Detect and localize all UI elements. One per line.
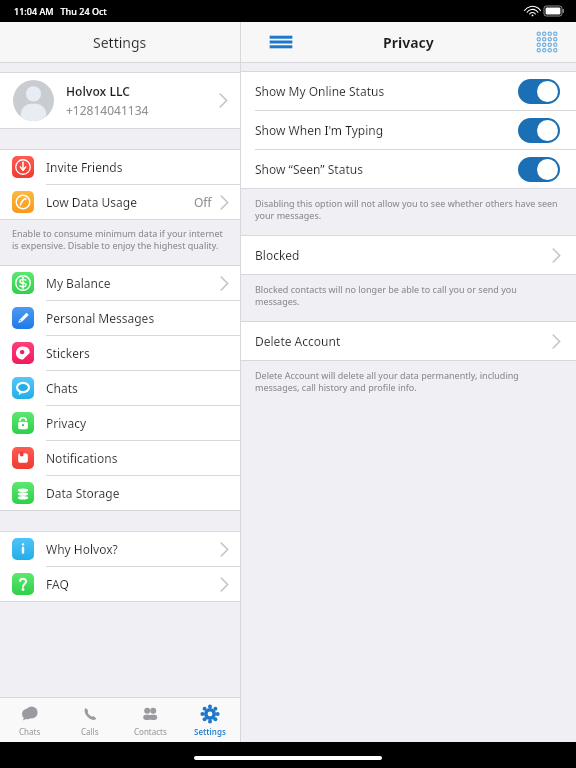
- button[interactable]: Delete Account: [241, 322, 576, 360]
- button[interactable]: Privacy: [0, 406, 240, 440]
- staticText: 11:04 AM Thu 24 Oct: [14, 5, 107, 17]
- button[interactable]: Show My Online Status: [241, 72, 576, 110]
- staticText: Personal Messages: [46, 310, 228, 326]
- staticText: Stickers: [46, 345, 228, 361]
- staticText: Why Holvox?: [46, 541, 220, 557]
- button[interactable]: Why Holvox?: [0, 532, 240, 566]
- staticText: Off: [194, 194, 212, 210]
- staticText: Settings: [93, 33, 147, 52]
- staticText: Blocked: [255, 247, 552, 263]
- staticText: Data Storage: [46, 485, 228, 501]
- staticText: Contacts: [134, 726, 167, 737]
- staticText: Blocked contacts will no longer be able …: [255, 283, 560, 308]
- staticText: FAQ: [46, 576, 220, 592]
- staticText: Chats: [19, 726, 41, 737]
- button[interactable]: Data Storage: [0, 476, 240, 510]
- staticText: Disabling this option will not allow you…: [255, 197, 560, 222]
- button[interactable]: Notifications: [0, 441, 240, 475]
- staticText: Privacy: [46, 415, 228, 431]
- button[interactable]: Calls: [60, 698, 120, 742]
- staticText: Notifications: [46, 450, 228, 466]
- staticText: Holvox LLC: [66, 83, 130, 99]
- button[interactable]: Show When I'm Typing: [241, 111, 576, 149]
- button[interactable]: FAQ: [0, 567, 240, 601]
- button[interactable]: Personal Messages: [0, 301, 240, 335]
- staticText: Settings: [194, 726, 226, 737]
- button[interactable]: Chats: [0, 371, 240, 405]
- button[interactable]: Blocked: [241, 236, 576, 274]
- staticText: Chats: [46, 380, 228, 396]
- staticText: Enable to consume minimum data if your i…: [12, 227, 226, 252]
- staticText: Low Data Usage: [46, 194, 194, 210]
- staticText: +12814041134: [66, 102, 149, 118]
- staticText: Show “Seen” Status: [255, 161, 518, 177]
- button[interactable]: Show “Seen” Status: [241, 150, 576, 188]
- button[interactable]: Menu: [269, 30, 293, 54]
- button[interactable]: Stickers: [0, 336, 240, 370]
- button[interactable]: Contacts: [120, 698, 180, 742]
- staticText: Show My Online Status: [255, 83, 518, 99]
- staticText: Delete Account: [255, 333, 552, 349]
- staticText: Privacy: [383, 33, 434, 52]
- button[interactable]: Chats: [0, 698, 60, 742]
- staticText: Calls: [81, 726, 99, 737]
- staticText: Show When I'm Typing: [255, 122, 518, 138]
- button[interactable]: Settings: [180, 698, 240, 742]
- button[interactable]: Low Data Usage: [0, 185, 240, 219]
- button[interactable]: Apps: [536, 31, 558, 53]
- button[interactable]: Invite Friends: [0, 150, 240, 184]
- staticText: Invite Friends: [46, 159, 228, 175]
- button[interactable]: My Balance: [0, 266, 240, 300]
- staticText: Delete Account will delete all your data…: [255, 369, 560, 394]
- staticText: My Balance: [46, 275, 220, 291]
- button[interactable]: Holvox LLC: [0, 73, 240, 128]
